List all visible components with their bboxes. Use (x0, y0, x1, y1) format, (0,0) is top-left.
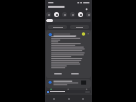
button[interactable] (48, 25, 67, 29)
button[interactable] (46, 79, 91, 88)
button[interactable]: Back (49, 95, 59, 102)
button[interactable] (46, 30, 91, 78)
button[interactable] (46, 90, 91, 93)
button[interactable]: Home (64, 95, 74, 102)
button[interactable]: Quick setting (46, 12, 51, 17)
button[interactable]: Quick setting (54, 12, 59, 17)
button[interactable]: Recents (78, 95, 88, 102)
button[interactable]: Quick setting (62, 12, 67, 17)
button[interactable]: Quick setting (86, 12, 91, 17)
button[interactable] (70, 25, 89, 29)
button[interactable]: Brightness (46, 19, 91, 22)
button[interactable]: Quick setting (78, 12, 83, 17)
button[interactable]: Quick setting (70, 12, 75, 17)
